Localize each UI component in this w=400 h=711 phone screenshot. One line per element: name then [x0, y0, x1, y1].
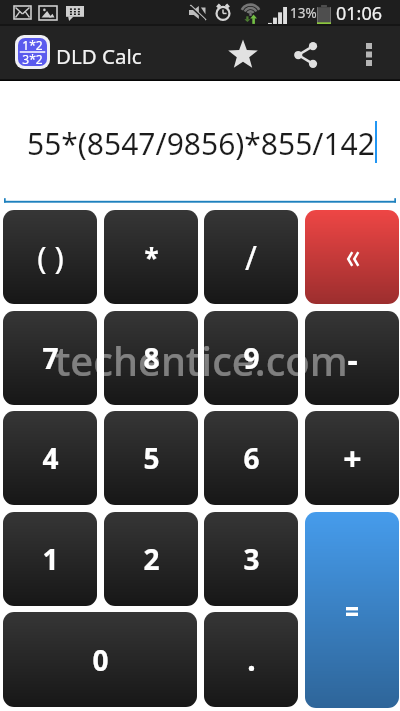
staticText: * [144, 240, 159, 275]
button[interactable]: 4 [3, 411, 97, 505]
staticText: 01:06 [336, 1, 383, 25]
button[interactable]: Share [277, 26, 334, 83]
button[interactable]: 7 [3, 311, 97, 405]
staticText: 3*2 [22, 51, 43, 66]
button[interactable]: 0 [3, 612, 197, 707]
staticText: 5 [143, 439, 160, 477]
button[interactable]: 6 [204, 411, 298, 505]
button[interactable]: 1 [3, 512, 97, 606]
button[interactable]: * [104, 210, 198, 304]
button[interactable] [305, 210, 399, 304]
button[interactable]: - [305, 311, 399, 405]
staticText: 9 [243, 339, 260, 377]
staticText: 6 [243, 439, 260, 477]
staticText: 13% [290, 4, 317, 22]
button[interactable] [305, 512, 399, 708]
staticText: ( ) [37, 236, 64, 278]
staticText: . [247, 639, 256, 680]
staticText: 0 [92, 641, 109, 679]
button[interactable]: / [204, 210, 298, 304]
button[interactable]: 9 [204, 311, 298, 405]
button[interactable]: . [204, 612, 298, 707]
button[interactable]: 3 [204, 512, 298, 606]
staticText: 1*2 [22, 38, 43, 53]
button[interactable]: 5 [104, 411, 198, 505]
staticText: 4 [42, 439, 59, 477]
staticText: 8 [143, 339, 160, 377]
button[interactable]: + [305, 411, 399, 505]
button[interactable]: 2 [104, 512, 198, 606]
staticText: DLD Calc [56, 42, 142, 70]
staticText: - [347, 338, 358, 382]
staticText: + [343, 437, 362, 481]
staticText: / [245, 236, 257, 280]
button[interactable]: 8 [104, 311, 198, 405]
button[interactable]: Favorite [214, 25, 271, 82]
staticText: 7 [42, 339, 59, 377]
staticText: 1 [42, 540, 59, 578]
staticText: 3 [243, 540, 260, 578]
staticText: 2 [143, 540, 160, 578]
button[interactable]: ( ) [3, 210, 97, 304]
staticText: techentice.com [55, 333, 348, 387]
button[interactable]: More options [345, 26, 393, 83]
staticText: 55*(8547/9856)*855/142 [27, 123, 375, 164]
